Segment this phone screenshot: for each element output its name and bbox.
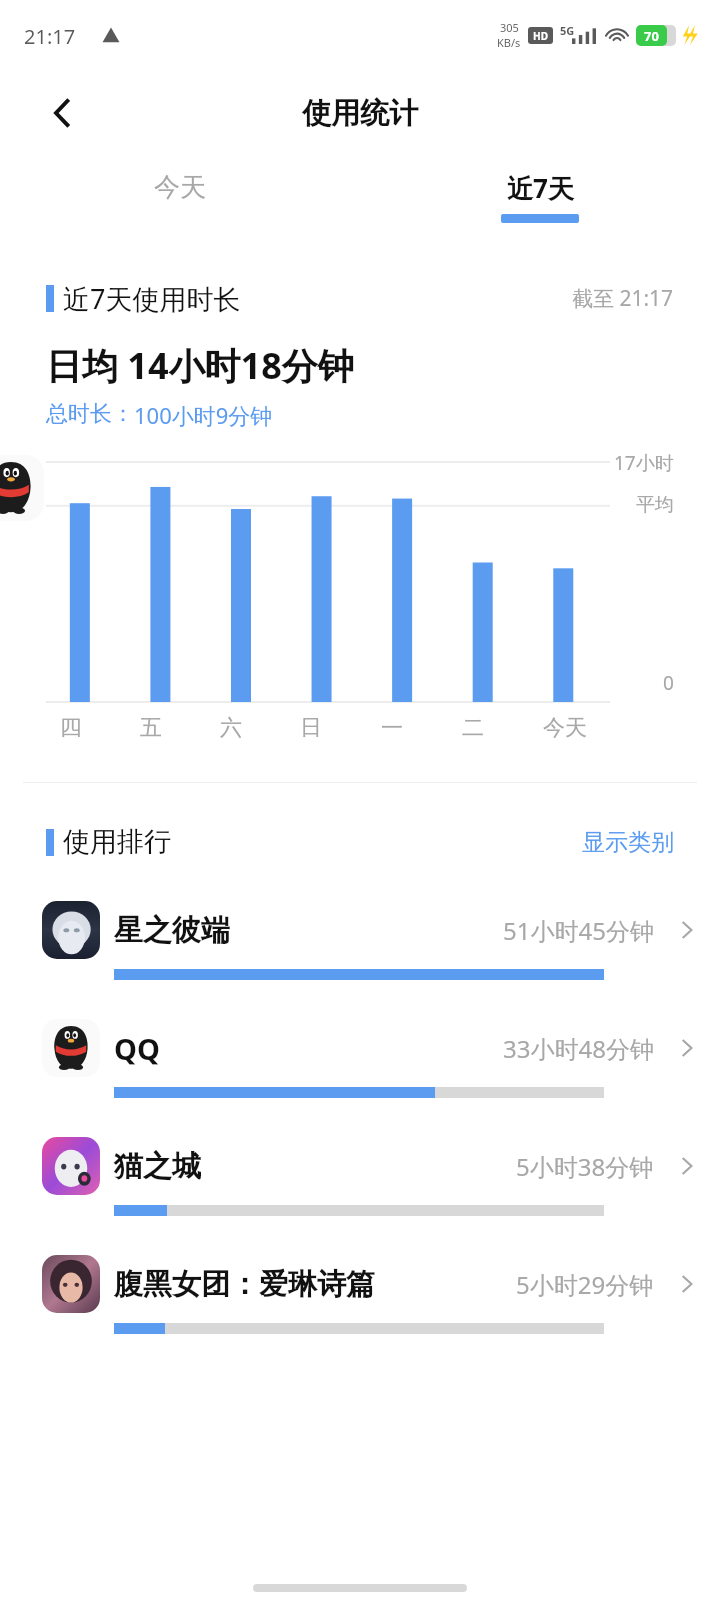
staticText: 今天 bbox=[543, 714, 587, 742]
staticText: 21:17 bbox=[24, 23, 76, 50]
staticText: 今天 bbox=[154, 171, 206, 204]
button[interactable]: 近7天 bbox=[360, 156, 720, 236]
staticText: 四 bbox=[60, 714, 82, 742]
staticText: 五 bbox=[140, 714, 162, 742]
staticText: 5小时29分钟 bbox=[516, 1268, 654, 1301]
staticText: 截至 21:17 bbox=[572, 284, 674, 313]
staticText: 51小时45分钟 bbox=[503, 914, 654, 947]
button[interactable]: 今天 bbox=[0, 156, 360, 236]
staticText: 显示类别 bbox=[582, 828, 674, 857]
staticText: 日 bbox=[300, 714, 322, 742]
staticText: 腹黑女团：爱琳诗篇 bbox=[114, 1266, 375, 1303]
button[interactable]: QQ bbox=[0, 1003, 720, 1121]
staticText: 日均 14小时18分钟 bbox=[46, 341, 354, 390]
staticText: 猫之城 bbox=[114, 1148, 201, 1185]
button[interactable]: 腹黑女团：爱琳诗篇 bbox=[0, 1239, 720, 1357]
staticText: 5G bbox=[560, 23, 575, 38]
staticText: 近7天使用时长 bbox=[63, 280, 241, 317]
staticText: 星之彼端 bbox=[114, 912, 230, 949]
staticText: 近7天 bbox=[507, 170, 574, 206]
staticText: 70 bbox=[644, 27, 659, 45]
button[interactable]: 猫之城 bbox=[0, 1121, 720, 1239]
staticText: 100小时9分钟 bbox=[134, 400, 273, 430]
button[interactable]: 显示类别 bbox=[582, 828, 674, 857]
staticText: 使用排行 bbox=[63, 825, 171, 859]
staticText: KB/s bbox=[497, 35, 521, 50]
button[interactable]: Back bbox=[26, 77, 98, 149]
staticText: 305 bbox=[500, 20, 519, 35]
staticText: 5小时38分钟 bbox=[516, 1150, 654, 1183]
staticText: 使用统计 bbox=[302, 95, 418, 132]
staticText: HD bbox=[533, 29, 548, 43]
button[interactable]: 星之彼端 bbox=[0, 885, 720, 1003]
staticText: 平均 bbox=[636, 493, 674, 517]
staticText: 0 bbox=[663, 670, 674, 696]
staticText: 二 bbox=[462, 714, 484, 742]
staticText: QQ bbox=[114, 1029, 160, 1068]
staticText: 17小时 bbox=[614, 450, 674, 476]
staticText: 总时长： bbox=[46, 400, 134, 428]
staticText: 六 bbox=[220, 714, 242, 742]
staticText: 33小时48分钟 bbox=[503, 1032, 654, 1065]
staticText: 一 bbox=[381, 714, 403, 742]
